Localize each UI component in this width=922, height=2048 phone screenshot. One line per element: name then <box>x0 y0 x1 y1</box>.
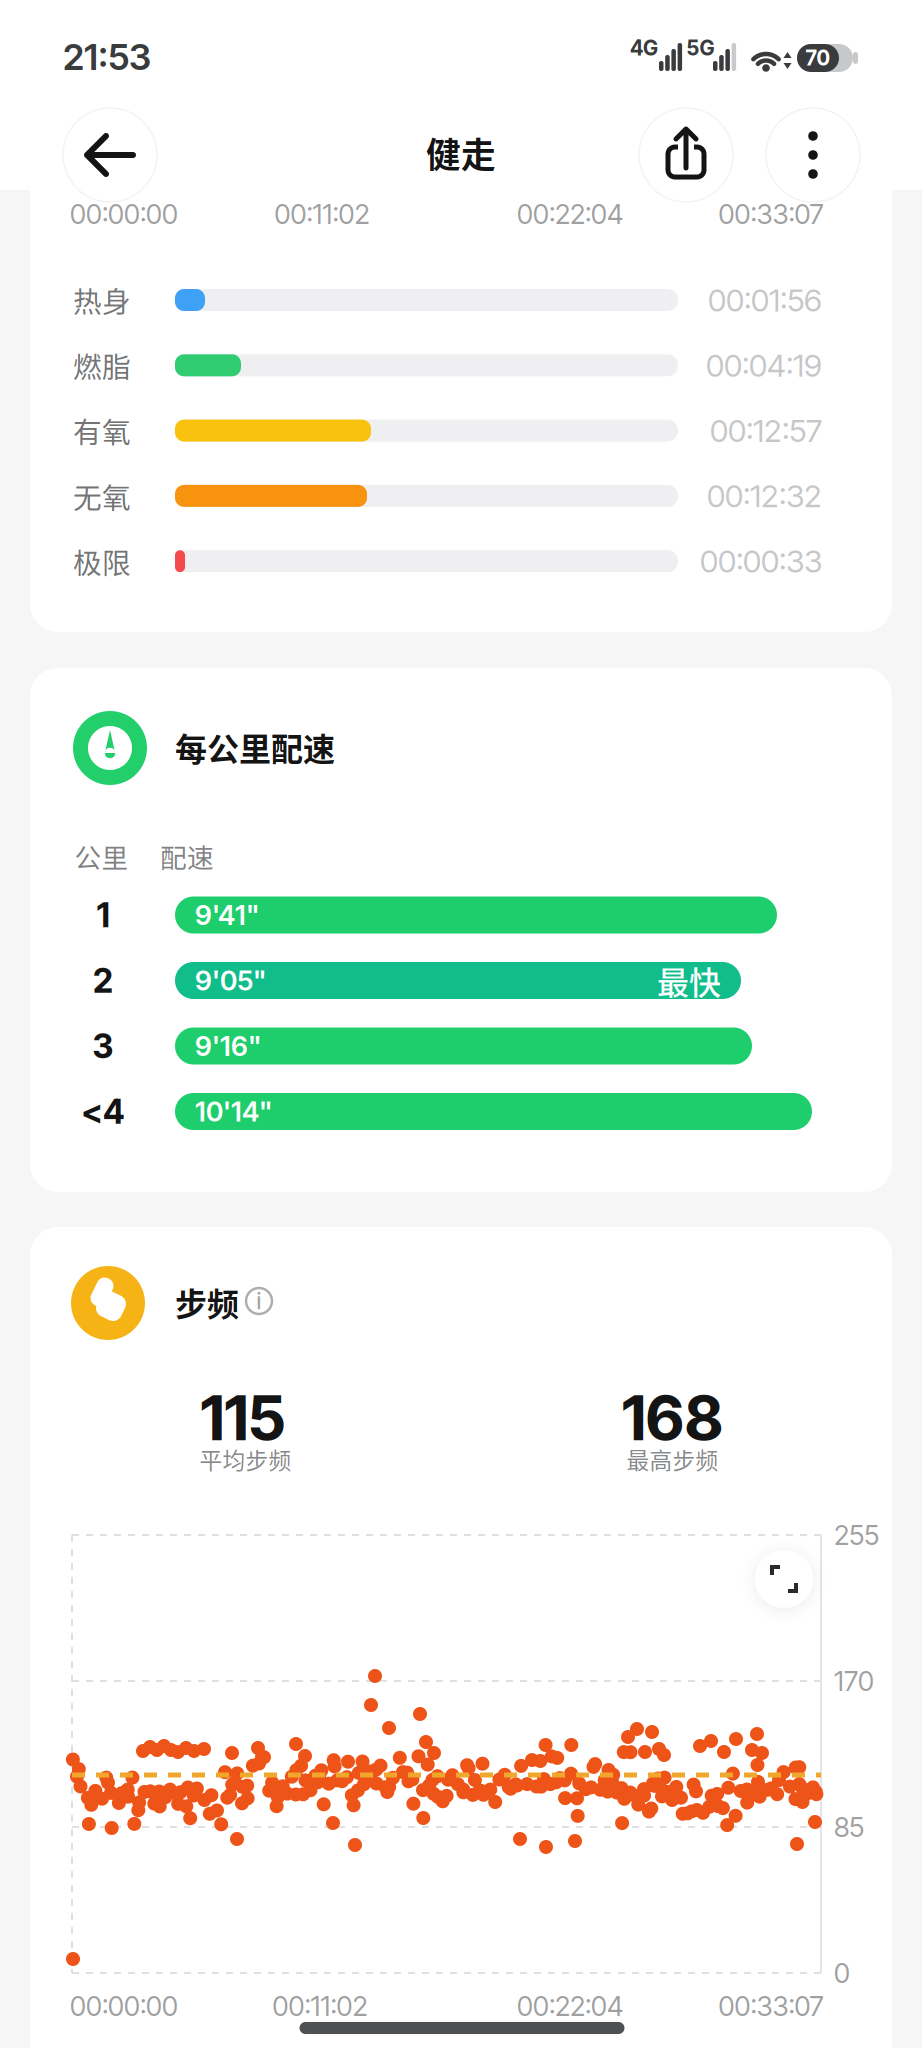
staticText: 3 <box>92 1026 113 1066</box>
button[interactable]: 步频说明 <box>235 1277 283 1325</box>
staticText: 00:00:00 <box>70 197 178 231</box>
staticText: 00:00:00 <box>70 1989 178 2023</box>
staticText: 无氧 <box>73 475 131 517</box>
staticText: 21:53 <box>63 35 151 79</box>
staticText: <4 <box>81 1091 125 1132</box>
staticText: 热身 <box>73 279 131 321</box>
staticText: 170 <box>834 1664 874 1698</box>
staticText: 00:12:32 <box>707 477 822 515</box>
staticText: 00:33:07 <box>718 1989 823 2023</box>
staticText: 公里 <box>74 837 128 875</box>
staticText: 最快 <box>657 957 721 1004</box>
staticText: 255 <box>834 1518 879 1552</box>
staticText: 健走 <box>426 128 496 178</box>
staticText: 00:04:19 <box>706 346 822 384</box>
staticText: 168 <box>621 1381 723 1455</box>
staticText: 00:22:04 <box>517 1989 623 2023</box>
button[interactable]: 返回 <box>63 108 157 202</box>
button[interactable]: 分享 <box>639 108 733 202</box>
staticText: 00:12:57 <box>710 412 822 449</box>
staticText: 10'14" <box>195 1095 272 1128</box>
staticText: 9'41" <box>195 898 259 932</box>
staticText: 00:33:07 <box>718 197 823 231</box>
staticText: 70 <box>805 45 830 70</box>
staticText: 00:11:02 <box>274 197 369 231</box>
staticText: 步频 <box>175 1279 239 1325</box>
staticText: i <box>256 1287 261 1315</box>
staticText: 最高步频 <box>626 1443 718 1475</box>
staticText: 0 <box>834 1956 850 1990</box>
staticText: 9'16" <box>195 1029 261 1063</box>
staticText: 115 <box>200 1381 286 1455</box>
staticText: 5G <box>686 35 714 60</box>
staticText: 85 <box>834 1810 864 1844</box>
staticText: 1 <box>96 895 109 935</box>
staticText: 平均步频 <box>199 1443 291 1475</box>
staticText: 4G <box>630 35 658 60</box>
staticText: 00:22:04 <box>517 197 623 231</box>
button[interactable]: 更多 <box>766 108 860 202</box>
staticText: 9'05" <box>195 964 266 997</box>
staticText: 00:01:56 <box>708 281 822 319</box>
button[interactable]: 全屏查看 <box>737 1532 831 1626</box>
staticText: 有氧 <box>73 410 131 451</box>
staticText: 2 <box>93 960 113 1001</box>
staticText: 燃脂 <box>73 344 131 386</box>
staticText: 00:00:33 <box>700 542 822 580</box>
staticText: 每公里配速 <box>175 724 335 770</box>
staticText: 极限 <box>73 540 131 582</box>
staticText: 00:11:02 <box>272 1989 367 2023</box>
staticText: 配速 <box>160 837 214 875</box>
